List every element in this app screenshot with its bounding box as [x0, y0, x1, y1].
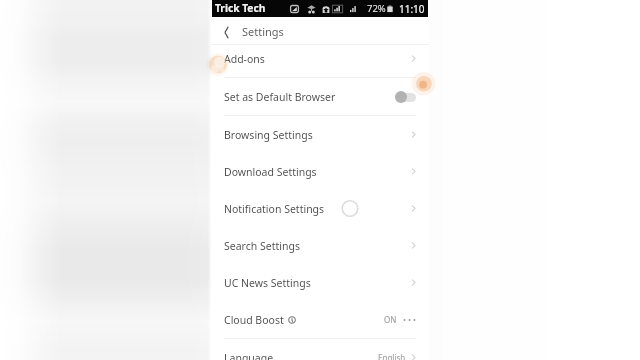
staticText: Search Settings: [224, 239, 300, 253]
button[interactable]: Language: [211, 339, 429, 360]
button[interactable]: Browsing Settings: [211, 116, 429, 153]
button[interactable]: Notification Settings: [211, 190, 429, 227]
staticText: Add-ons: [224, 52, 265, 66]
button[interactable]: Back: [217, 17, 235, 45]
staticText: Browsing Settings: [224, 128, 313, 142]
staticText: Cloud Boost: [224, 313, 284, 327]
staticText: UC News Settings: [224, 276, 311, 290]
staticText: Download Settings: [224, 165, 317, 179]
staticText: 72%: [367, 2, 386, 15]
button[interactable]: Search Settings: [211, 227, 429, 264]
staticText: ON: [384, 314, 397, 325]
button[interactable]: Download Settings: [211, 153, 429, 190]
button[interactable]: More options: [403, 313, 416, 327]
staticText: Settings: [242, 24, 284, 39]
staticText: Notification Settings: [224, 202, 325, 216]
staticText: Language: [224, 351, 274, 360]
staticText: Set as Default Browser: [224, 90, 336, 104]
staticText: Trick Tech: [215, 1, 266, 15]
button[interactable]: UC News Settings: [211, 264, 429, 301]
button[interactable]: Set as default browser toggle: [395, 91, 416, 103]
staticText: 11:10: [399, 2, 425, 16]
button[interactable]: Cloud Boost: [211, 301, 429, 338]
staticText: English: [378, 352, 406, 360]
button[interactable]: Set as Default Browser: [211, 78, 429, 115]
button[interactable]: Add-ons: [211, 40, 429, 77]
